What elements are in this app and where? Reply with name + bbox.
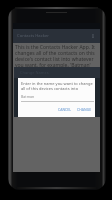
button[interactable]: Contacts Hacker — [13, 29, 100, 43]
staticText: Batman — [21, 94, 35, 99]
staticText: This is the Contacts Hacker App. It chan… — [15, 44, 98, 69]
staticText: CANCEL — [58, 107, 72, 112]
staticText: Contacts Hacker — [17, 33, 50, 39]
button[interactable]: More options — [88, 31, 98, 41]
staticText: CHANGE — [77, 107, 92, 112]
button[interactable]: CHANGE — [75, 106, 94, 113]
staticText: Enter in the name you want to change all… — [21, 81, 94, 91]
staticText: Change Names — [20, 70, 49, 75]
button[interactable]: CANCEL — [56, 106, 74, 113]
